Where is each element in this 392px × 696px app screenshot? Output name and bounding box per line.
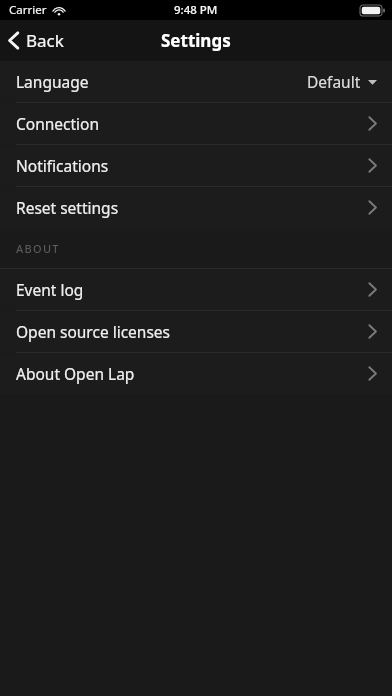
other: Notifications — [368, 158, 377, 173]
button[interactable]: Reset settings — [0, 187, 392, 228]
staticText: Back — [26, 29, 64, 52]
button[interactable]: Notifications — [0, 145, 392, 186]
other: About Open Lap — [368, 366, 377, 381]
other: Connection — [368, 116, 377, 131]
button[interactable]: About Open Lap — [0, 353, 392, 394]
other: Open source licenses — [368, 324, 377, 339]
staticText: 9:48 PM — [174, 2, 218, 18]
staticText: Event log — [16, 279, 84, 300]
other: Reset settings — [368, 200, 377, 215]
button[interactable]: Language — [0, 61, 392, 102]
staticText: ABOUT — [16, 241, 60, 256]
staticText: Notifications — [16, 155, 109, 176]
staticText: Default — [307, 71, 361, 92]
staticText: About Open Lap — [16, 363, 135, 384]
staticText: Settings — [161, 29, 231, 52]
button[interactable]: Event log — [0, 269, 392, 310]
staticText: Carrier — [9, 2, 47, 18]
staticText: Language — [16, 71, 89, 92]
button[interactable]: Open source licenses — [0, 311, 392, 352]
button[interactable]: Back — [0, 20, 74, 61]
staticText: Open source licenses — [16, 321, 171, 342]
staticText: Connection — [16, 113, 100, 134]
button[interactable]: Connection — [0, 103, 392, 144]
staticText: Reset settings — [16, 197, 119, 218]
other: Event log — [368, 282, 377, 297]
